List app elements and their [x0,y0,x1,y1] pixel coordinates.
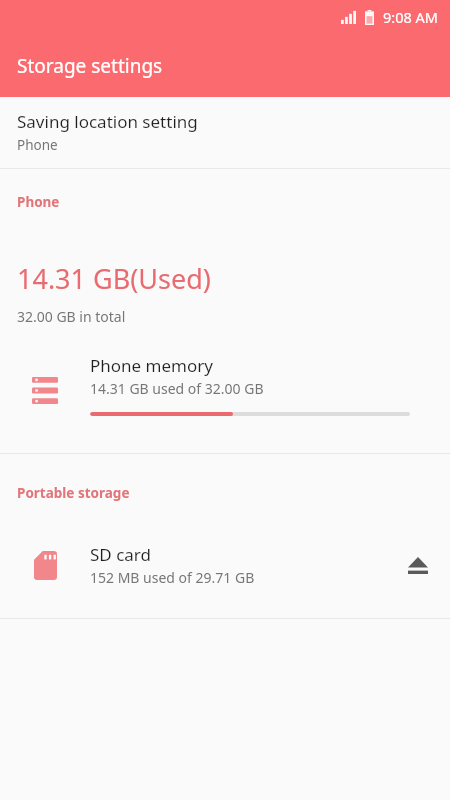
staticText: 14.31 GB(Used) [17,260,211,297]
staticText: 14.31 GB used of 32.00 GB [90,379,264,398]
staticText: 32.00 GB in total [17,307,126,326]
staticText: Storage settings [17,53,163,79]
staticText: Phone memory [90,354,213,377]
staticText: Saving location setting [17,110,198,133]
staticText: Phone [17,136,58,154]
button[interactable]: Phone memory [0,354,450,432]
staticText: SD card [90,543,151,566]
staticText: Portable storage [17,484,130,502]
button[interactable]: Saving location setting [0,97,450,168]
staticText: 152 MB used of 29.71 GB [90,568,255,587]
button[interactable]: SD card [0,532,450,598]
staticText: Phone [17,193,60,211]
button[interactable]: Eject SD card [386,535,450,595]
staticText: 9:08 AM [383,7,438,27]
